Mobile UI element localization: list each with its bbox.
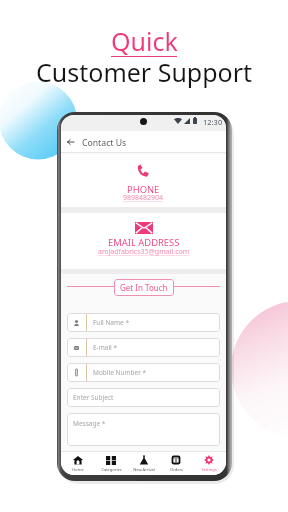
staticText: Enter Subject [73, 393, 114, 402]
button[interactable]: Enter Subject [67, 388, 220, 407]
button[interactable]: Back [63, 135, 78, 148]
button[interactable]: E-mail * [67, 338, 220, 357]
button[interactable]: Message * [67, 413, 220, 446]
staticText: Full Name * [93, 318, 130, 327]
staticText: Orders [170, 467, 183, 472]
staticText: New Arrival [133, 467, 155, 472]
staticText: Settings [201, 467, 217, 472]
staticText: PHONE [127, 183, 160, 196]
button[interactable]: Home [62, 451, 94, 475]
button[interactable]: PHONE [61, 155, 226, 207]
staticText: Home [72, 467, 84, 472]
staticText: Get In Touch [120, 282, 168, 293]
staticText: Contact Us [82, 137, 127, 149]
staticText: EMAIL ADDRESS [108, 236, 180, 249]
staticText: E-mail * [93, 343, 118, 352]
staticText: Mobile Number * [93, 368, 147, 377]
staticText: amjadfabrics35@gmail.com [98, 247, 190, 257]
button[interactable]: New Arrival [128, 451, 160, 475]
button[interactable]: Orders [160, 451, 192, 475]
staticText: Quick [111, 24, 178, 58]
button[interactable]: Get In Touch [114, 279, 174, 296]
button[interactable]: Full Name * [67, 313, 220, 332]
staticText: Message * [73, 419, 106, 428]
staticText: 9898482904 [123, 193, 164, 203]
staticText: Categories [101, 467, 122, 472]
staticText: Customer Support [36, 55, 253, 89]
button[interactable]: Categories [95, 451, 127, 475]
button[interactable]: Mobile Number * [67, 363, 220, 382]
button[interactable]: Settings [193, 451, 225, 475]
staticText: 12:30 [203, 117, 223, 127]
button[interactable]: EMAIL ADDRESS [61, 213, 226, 269]
